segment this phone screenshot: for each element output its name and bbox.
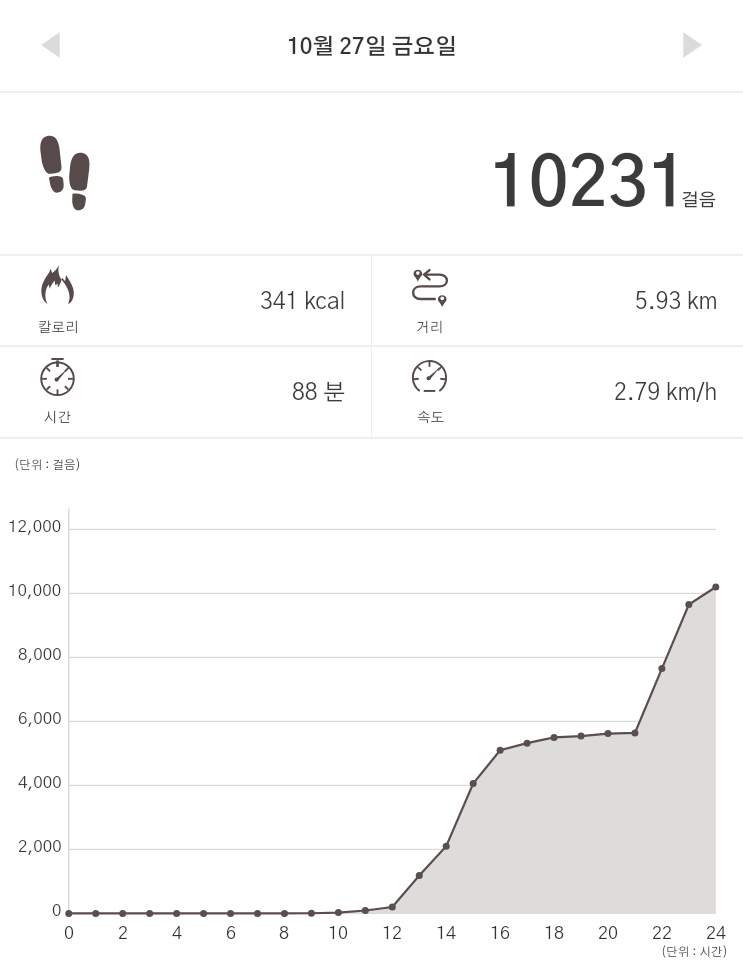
staticText: 2 bbox=[118, 925, 129, 943]
staticText: 12 bbox=[382, 925, 403, 943]
staticText: 칼로리 bbox=[38, 321, 79, 335]
staticText: 10월 27일 금요일 bbox=[287, 36, 457, 58]
staticText: 걸음 bbox=[681, 192, 717, 210]
staticText: 2.79 km/h bbox=[614, 382, 718, 405]
staticText: 22 bbox=[652, 925, 673, 943]
staticText: 거리 bbox=[416, 321, 443, 335]
staticText: 88 분 bbox=[292, 382, 346, 405]
staticText: 12,000 bbox=[8, 518, 62, 535]
staticText: 시간 bbox=[44, 411, 71, 425]
staticText: 20 bbox=[598, 925, 619, 943]
staticText: 16 bbox=[490, 925, 511, 943]
button[interactable]: 속도 bbox=[372, 345, 743, 436]
button[interactable]: 칼로리 bbox=[0, 254, 372, 345]
staticText: 4,000 bbox=[18, 774, 62, 791]
staticText: 2,000 bbox=[18, 838, 62, 855]
staticText: 8,000 bbox=[18, 646, 62, 663]
staticText: 18 bbox=[544, 925, 565, 943]
staticText: 14 bbox=[436, 925, 457, 943]
staticText: 속도 bbox=[417, 411, 444, 425]
staticText: 10231 bbox=[489, 151, 688, 220]
staticText: 0 bbox=[64, 925, 75, 943]
staticText: 10 bbox=[328, 925, 349, 943]
staticText: 8 bbox=[279, 925, 290, 943]
staticText: 6,000 bbox=[18, 710, 62, 727]
button[interactable]: 시간 bbox=[0, 345, 372, 436]
button[interactable]: Next day bbox=[668, 21, 716, 69]
button[interactable]: Previous day bbox=[26, 21, 74, 69]
staticText: 0 bbox=[52, 902, 62, 919]
staticText: 6 bbox=[226, 925, 237, 943]
staticText: 24 bbox=[706, 925, 727, 943]
button[interactable]: 10231 bbox=[488, 131, 688, 231]
staticText: 4 bbox=[172, 925, 183, 943]
staticText: (단위 : 시간) bbox=[661, 946, 728, 958]
staticText: (단위 : 걸음) bbox=[14, 459, 81, 471]
staticText: 341 kcal bbox=[260, 291, 346, 314]
staticText: 10,000 bbox=[8, 582, 62, 599]
button[interactable]: 거리 bbox=[372, 254, 743, 345]
staticText: 5.93 km bbox=[635, 291, 718, 314]
